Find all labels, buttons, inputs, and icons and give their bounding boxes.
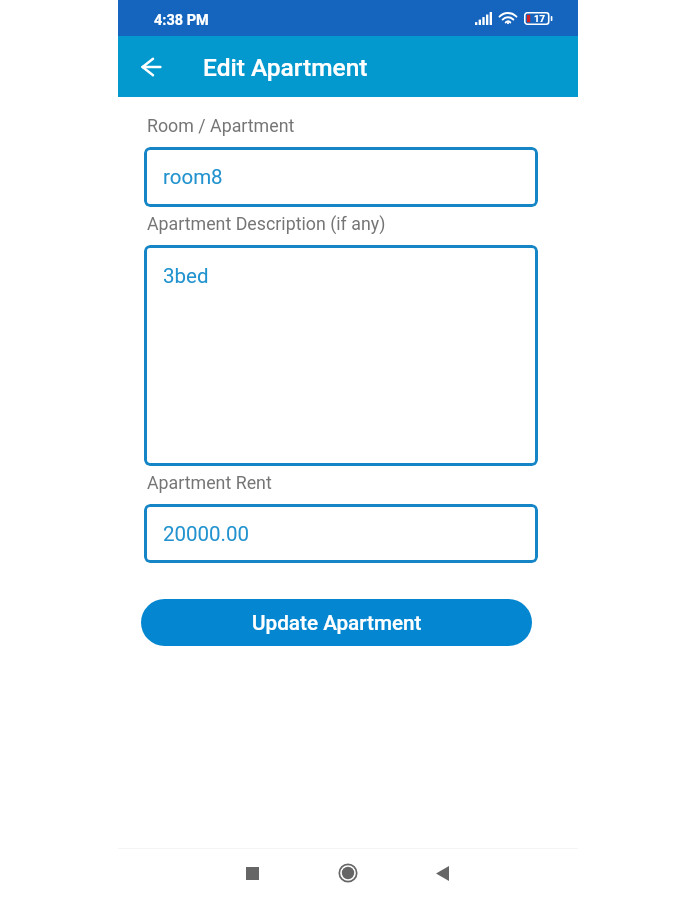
staticText: Edit Apartment xyxy=(203,53,368,82)
staticText: 4:38 PM xyxy=(154,12,209,29)
button[interactable]: 3bed xyxy=(144,245,538,466)
button[interactable]: Back xyxy=(420,851,464,895)
staticText: Room / Apartment xyxy=(147,115,295,136)
button[interactable]: Back xyxy=(129,45,173,89)
button[interactable]: Recent apps xyxy=(230,851,274,895)
staticText: 20000.00 xyxy=(163,522,250,546)
staticText: 3bed xyxy=(163,264,209,288)
button[interactable]: 20000.00 xyxy=(144,504,538,563)
staticText: 17 xyxy=(534,13,545,24)
staticText: Apartment Description (if any) xyxy=(147,213,386,234)
staticText: room8 xyxy=(163,165,223,189)
button[interactable]: Update Apartment xyxy=(141,599,532,646)
button[interactable]: room8 xyxy=(144,147,538,207)
staticText: Apartment Rent xyxy=(147,472,272,493)
button[interactable]: Home xyxy=(326,851,370,895)
staticText: Update Apartment xyxy=(252,611,422,635)
